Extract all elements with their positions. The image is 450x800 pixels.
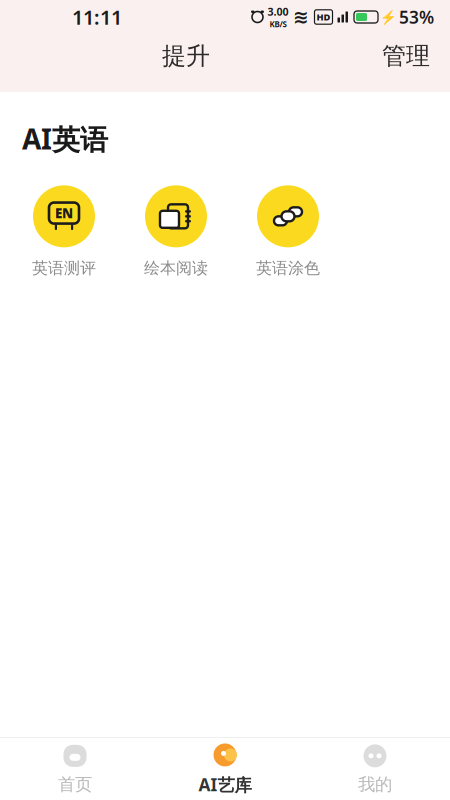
- staticText: AI英语: [22, 120, 108, 157]
- staticText: KB/S: [269, 19, 286, 29]
- staticText: ⚡: [380, 9, 397, 25]
- staticText: 英语测评: [32, 258, 96, 278]
- staticText: 11:11: [72, 4, 122, 30]
- button[interactable]: 绘本阅读: [120, 183, 232, 280]
- staticText: 我的: [358, 774, 392, 795]
- staticText: 首页: [58, 774, 92, 795]
- staticText: ≋: [293, 6, 309, 28]
- staticText: 3.00: [267, 5, 288, 19]
- staticText: HD: [316, 11, 330, 23]
- staticText: 管理: [382, 41, 430, 71]
- staticText: 绘本阅读: [144, 258, 208, 278]
- button[interactable]: 提升: [148, 33, 224, 79]
- button[interactable]: 首页: [0, 737, 150, 800]
- staticText: 英语涂色: [256, 258, 320, 278]
- staticText: 53%: [399, 5, 434, 28]
- staticText: AI艺库: [198, 773, 251, 796]
- staticText: 提升: [162, 41, 210, 71]
- button[interactable]: EN: [8, 183, 120, 280]
- button[interactable]: 英语涂色: [232, 183, 344, 280]
- button[interactable]: AI艺库: [150, 736, 300, 800]
- staticText: EN: [55, 204, 73, 222]
- button[interactable]: 管理: [372, 33, 440, 79]
- button[interactable]: 我的: [300, 737, 450, 800]
